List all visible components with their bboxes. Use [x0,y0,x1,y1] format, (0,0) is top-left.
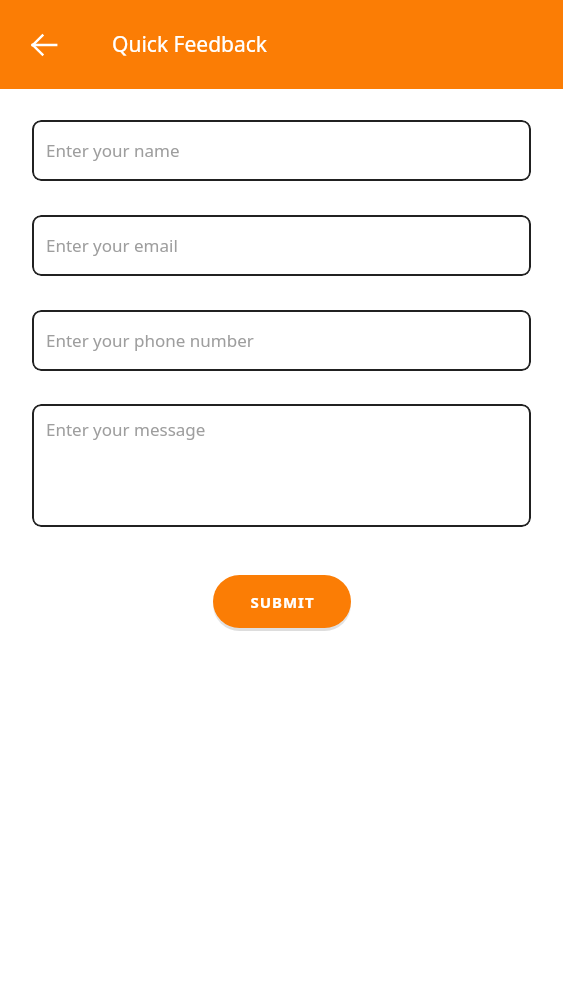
button[interactable]: Back [20,21,68,69]
button[interactable]: Enter your message [32,404,531,527]
button[interactable]: SUBMIT [213,575,351,628]
staticText: Enter your email [46,234,178,257]
staticText: Enter your message [46,418,206,441]
staticText: Enter your phone number [46,329,254,352]
button[interactable]: Enter your phone number [32,310,531,371]
button[interactable]: Enter your name [32,120,531,181]
staticText: Enter your name [46,139,180,162]
staticText: Quick Feedback [112,30,268,59]
staticText: SUBMIT [250,592,315,612]
button[interactable]: Enter your email [32,215,531,276]
